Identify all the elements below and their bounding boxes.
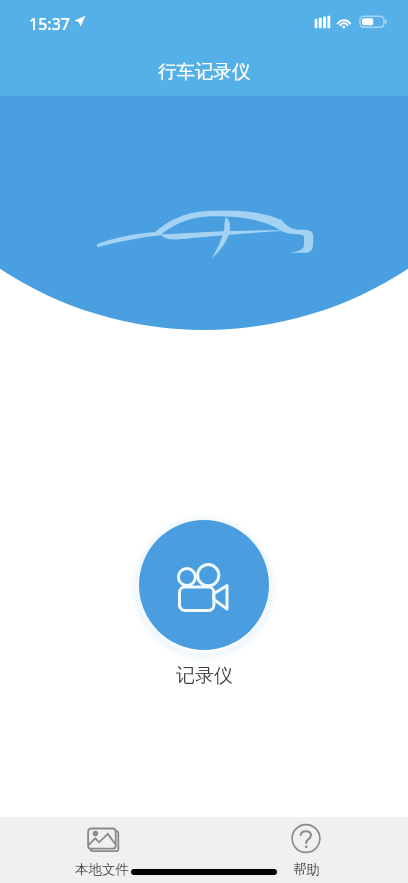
staticText: 帮助: [293, 861, 320, 878]
staticText: 15:37: [29, 13, 70, 35]
staticText: 记录仪: [176, 664, 233, 688]
button[interactable]: 帮助: [204, 817, 408, 883]
button[interactable]: 记录仪: [139, 520, 269, 650]
staticText: 本地文件: [75, 861, 129, 878]
button[interactable]: 本地文件: [0, 817, 204, 883]
staticText: 行车记录仪: [158, 60, 251, 83]
